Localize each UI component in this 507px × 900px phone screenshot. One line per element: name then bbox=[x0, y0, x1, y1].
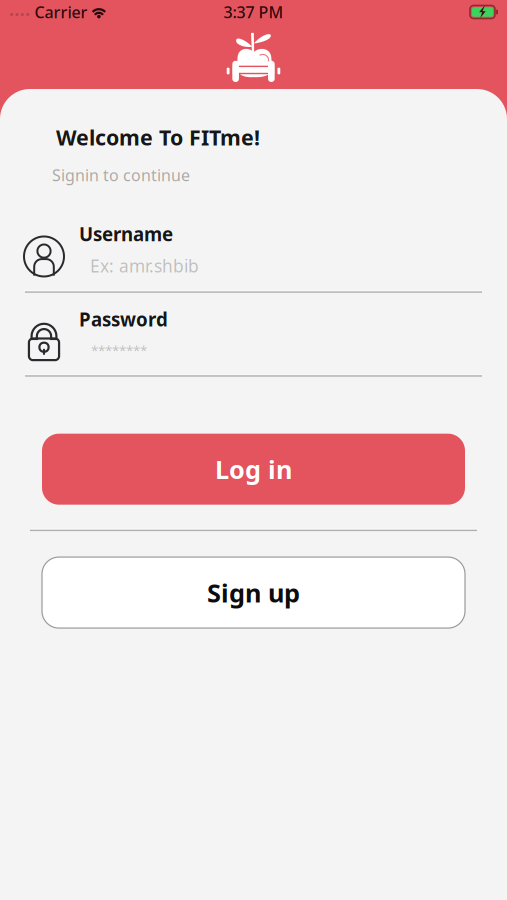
staticText: Username bbox=[79, 222, 173, 246]
staticText: Sign up bbox=[207, 576, 300, 609]
staticText: Ex: amr.shbib bbox=[90, 254, 199, 277]
staticText: Log in bbox=[215, 452, 292, 486]
button[interactable]: Sign up bbox=[42, 557, 465, 628]
button[interactable]: Log in bbox=[42, 434, 465, 505]
staticText: 3:37 PM bbox=[223, 1, 283, 23]
button[interactable]: Password bbox=[0, 307, 507, 359]
staticText: Carrier bbox=[34, 1, 87, 23]
staticText: Password bbox=[79, 307, 168, 332]
staticText: Welcome To FITme! bbox=[56, 123, 260, 151]
staticText: ******** bbox=[91, 342, 147, 359]
button[interactable]: Username bbox=[0, 222, 507, 277]
staticText: Signin to continue bbox=[52, 164, 190, 185]
